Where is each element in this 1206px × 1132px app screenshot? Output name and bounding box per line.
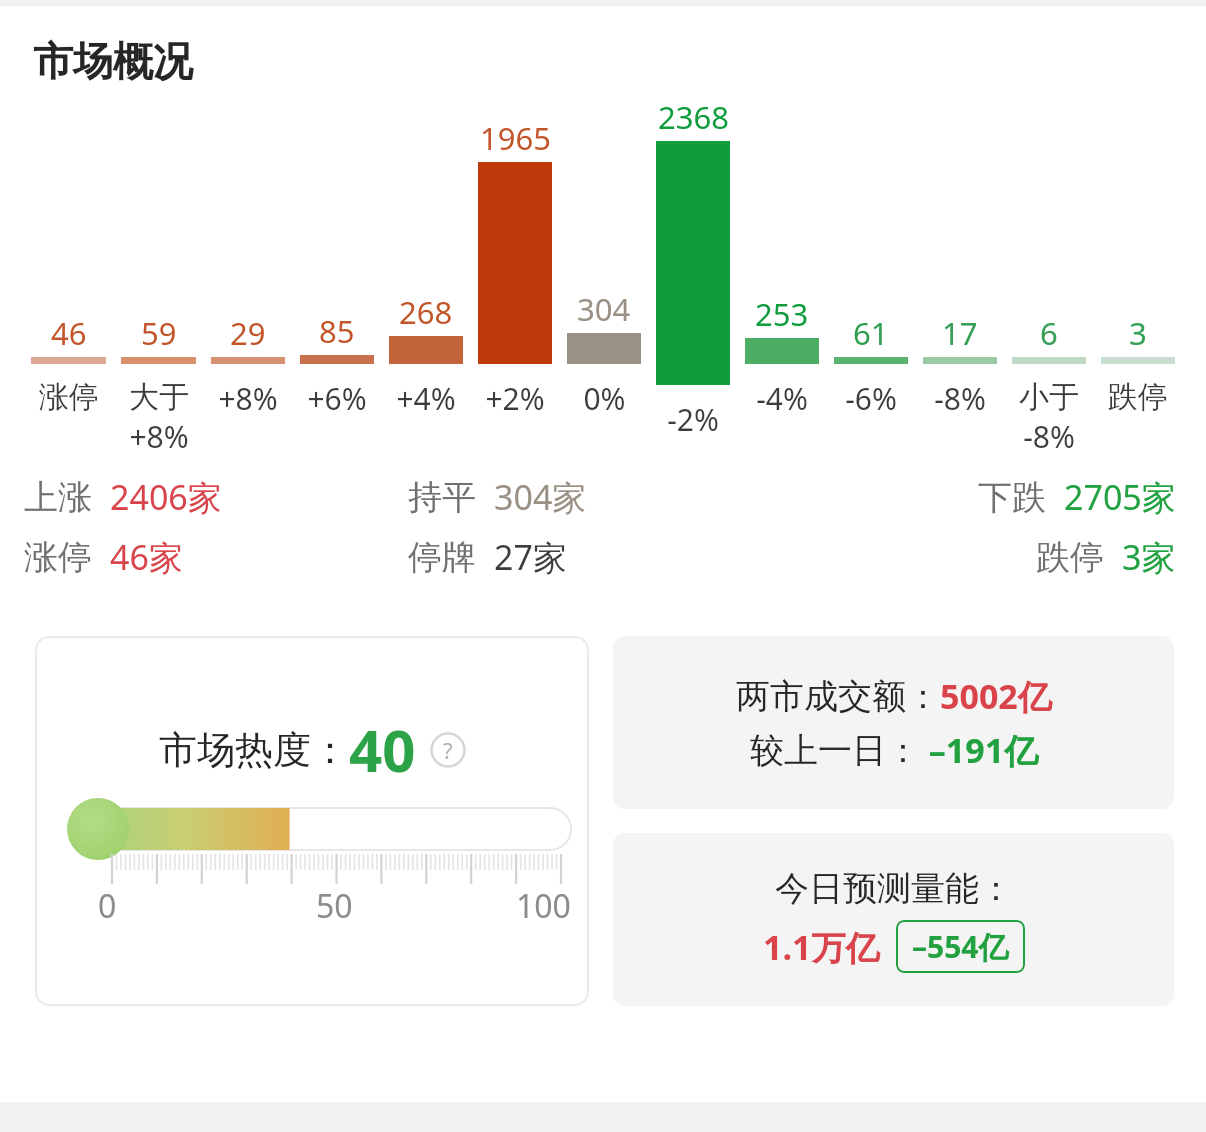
staticText: 61 <box>853 312 889 354</box>
button[interactable]: 市场热度： <box>35 636 589 1006</box>
staticText: 268 <box>399 291 453 333</box>
staticText: -2% <box>667 399 719 440</box>
staticText: 304 <box>577 288 631 330</box>
staticText: 0% <box>583 378 626 419</box>
staticText: 6 <box>1040 312 1058 354</box>
staticText: 17 <box>942 312 978 354</box>
staticText: +8% <box>218 378 278 419</box>
staticText: -4% <box>756 378 808 419</box>
staticText: 1965 <box>480 117 551 159</box>
staticText: 46 <box>51 312 87 354</box>
staticText: +6% <box>307 378 367 419</box>
staticText: 100 <box>516 884 571 928</box>
staticText: 下跌 <box>978 476 1046 519</box>
staticText: 85 <box>319 310 355 352</box>
staticText: -8% <box>1023 416 1075 456</box>
staticText: 大于 <box>129 378 189 416</box>
button[interactable]: 帮助说明 <box>430 732 466 768</box>
staticText: -8% <box>934 378 986 419</box>
button[interactable]: 今日预测量能： <box>613 833 1174 1006</box>
staticText: 27家 <box>494 534 567 580</box>
staticText: 3家 <box>1122 534 1176 580</box>
staticText: 5002亿 <box>940 673 1052 719</box>
staticText: 较上一日： <box>750 729 920 772</box>
staticText: +4% <box>396 378 456 419</box>
staticText: 涨停 <box>24 536 92 579</box>
staticText: 2705家 <box>1064 474 1176 520</box>
staticText: 停牌 <box>408 536 476 579</box>
staticText: 今日预测量能： <box>775 867 1013 910</box>
button[interactable]: 两市成交额： <box>613 636 1174 809</box>
staticText: 3 <box>1129 312 1147 354</box>
staticText: 上涨 <box>24 476 92 519</box>
staticText: 2406家 <box>110 474 222 520</box>
staticText: 市场热度： <box>159 726 349 774</box>
staticText: 2368 <box>658 96 729 138</box>
staticText: –191亿 <box>920 727 1039 773</box>
staticText: 29 <box>230 312 266 354</box>
staticText: 两市成交额： <box>736 675 940 718</box>
staticText: +8% <box>129 416 189 456</box>
staticText: –554亿 <box>912 926 1009 967</box>
staticText: 持平 <box>408 476 476 519</box>
staticText: +2% <box>485 378 545 419</box>
staticText: 50 <box>316 884 353 928</box>
staticText: 46家 <box>110 534 183 580</box>
staticText: ? <box>443 735 453 765</box>
staticText: 小于 <box>1019 378 1079 416</box>
staticText: 253 <box>755 293 809 335</box>
staticText: 1.1万亿 <box>763 924 880 970</box>
staticText: 0 <box>98 884 117 928</box>
staticText: -6% <box>845 378 897 419</box>
staticText: 304家 <box>494 474 587 520</box>
staticText: 40 <box>349 710 416 789</box>
staticText: 市场概况 <box>33 36 193 86</box>
staticText: 跌停 <box>1036 536 1104 579</box>
staticText: 涨停 <box>39 378 99 416</box>
staticText: 跌停 <box>1108 378 1168 416</box>
staticText: 59 <box>141 312 177 354</box>
